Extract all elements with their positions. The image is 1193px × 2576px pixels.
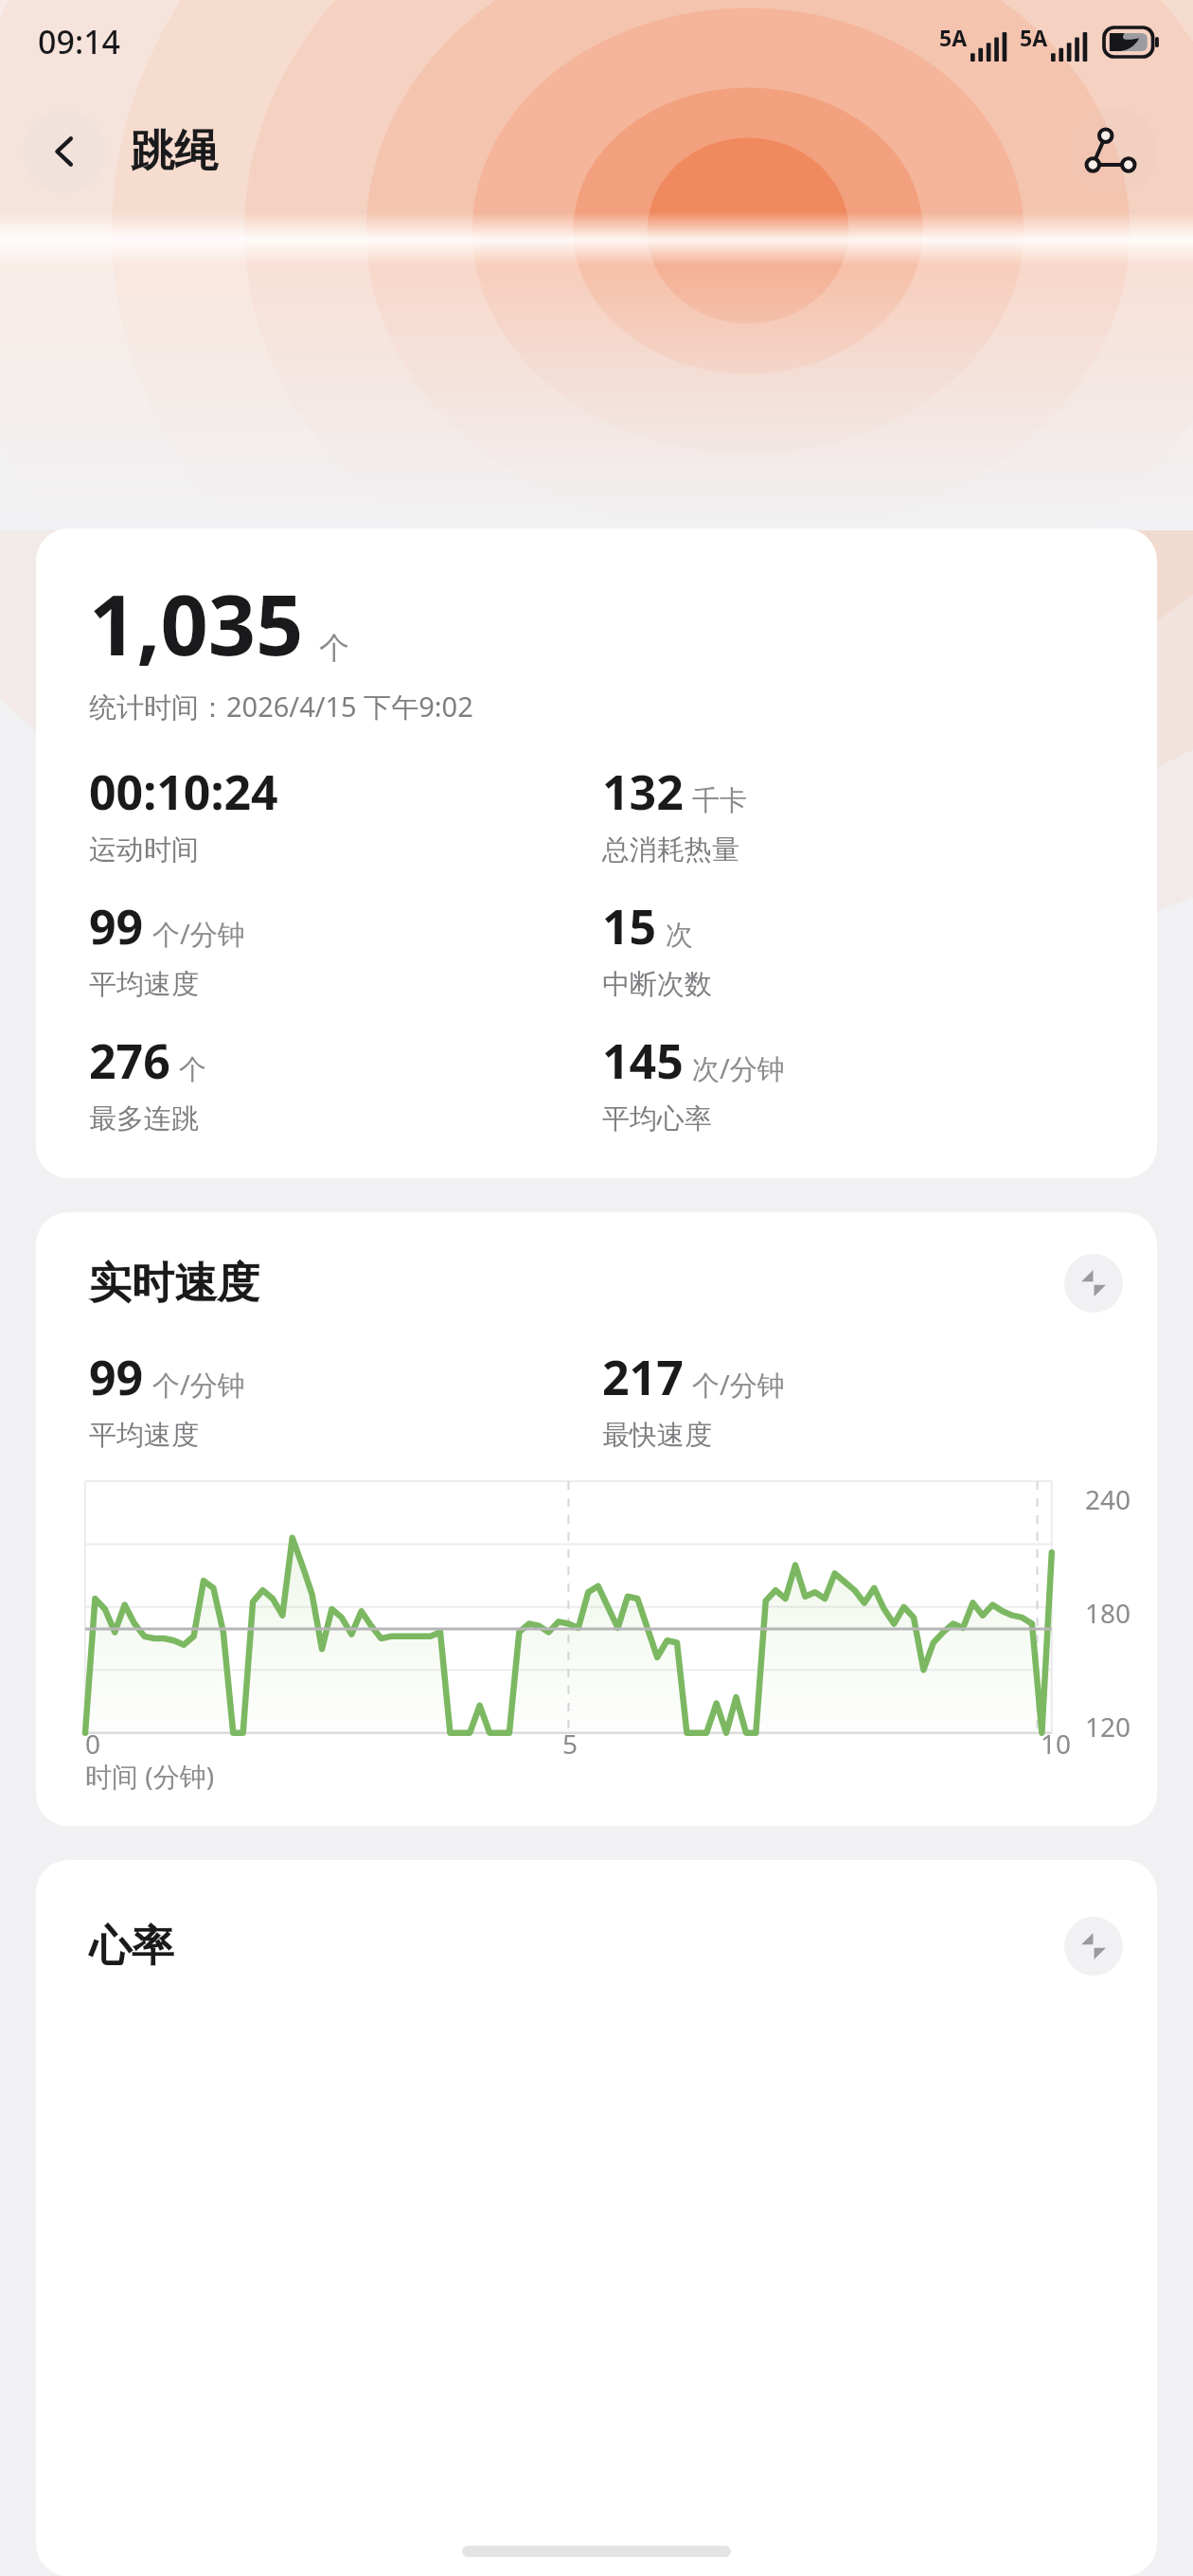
staticText: 个/分钟 xyxy=(152,915,245,953)
staticText: 10 xyxy=(1041,1726,1072,1762)
staticText: 99 xyxy=(89,894,144,958)
staticText: 99 xyxy=(89,1345,144,1409)
staticText: 145 xyxy=(602,1029,684,1093)
staticText: 180 xyxy=(1085,1595,1131,1631)
staticText: 次/分钟 xyxy=(692,1049,785,1087)
staticText: 0 xyxy=(85,1726,101,1762)
staticText: 中断次数 xyxy=(602,967,712,1002)
staticText: 统计时间：2026/4/15 下午9:02 xyxy=(89,688,473,725)
staticText: 1,035 xyxy=(89,566,304,680)
button[interactable]: Share xyxy=(1068,107,1157,196)
staticText: 实时速度 xyxy=(89,1257,259,1311)
staticText: 217 xyxy=(602,1345,684,1409)
staticText: 总消耗热量 xyxy=(602,832,739,868)
staticText: 5A xyxy=(939,23,968,52)
staticText: 平均心率 xyxy=(602,1101,712,1136)
staticText: 平均速度 xyxy=(89,1418,199,1453)
staticText: 个 xyxy=(319,629,349,667)
staticText: 最多连跳 xyxy=(89,1101,199,1136)
staticText: 最快速度 xyxy=(602,1418,712,1453)
staticText: 5A xyxy=(1020,23,1048,52)
staticText: 120 xyxy=(1085,1708,1131,1744)
button[interactable]: Back xyxy=(23,110,106,193)
staticText: 132 xyxy=(602,760,684,824)
staticText: 个/分钟 xyxy=(692,1366,785,1404)
staticText: 个/分钟 xyxy=(152,1366,245,1404)
staticText: 千卡 xyxy=(692,783,747,818)
staticText: 平均速度 xyxy=(89,967,199,1002)
staticText: 276 xyxy=(89,1029,170,1093)
button[interactable]: Expand chart xyxy=(1064,1917,1123,1976)
staticText: 心率 xyxy=(89,1920,174,1974)
staticText: 次 xyxy=(666,918,693,953)
staticText: 5 xyxy=(562,1726,579,1762)
staticText: 15 xyxy=(602,894,657,958)
staticText: 09:14 xyxy=(38,20,121,63)
button[interactable]: Expand chart xyxy=(1064,1254,1123,1313)
staticText: 240 xyxy=(1085,1481,1131,1517)
staticText: 00:10:24 xyxy=(89,760,278,824)
staticText: 运动时间 xyxy=(89,832,199,868)
staticText: 跳绳 xyxy=(131,124,218,179)
button[interactable]: 1,035 xyxy=(36,528,1157,1178)
staticText: 个 xyxy=(179,1052,206,1087)
staticText: 时间 (分钟) xyxy=(85,1758,215,1794)
